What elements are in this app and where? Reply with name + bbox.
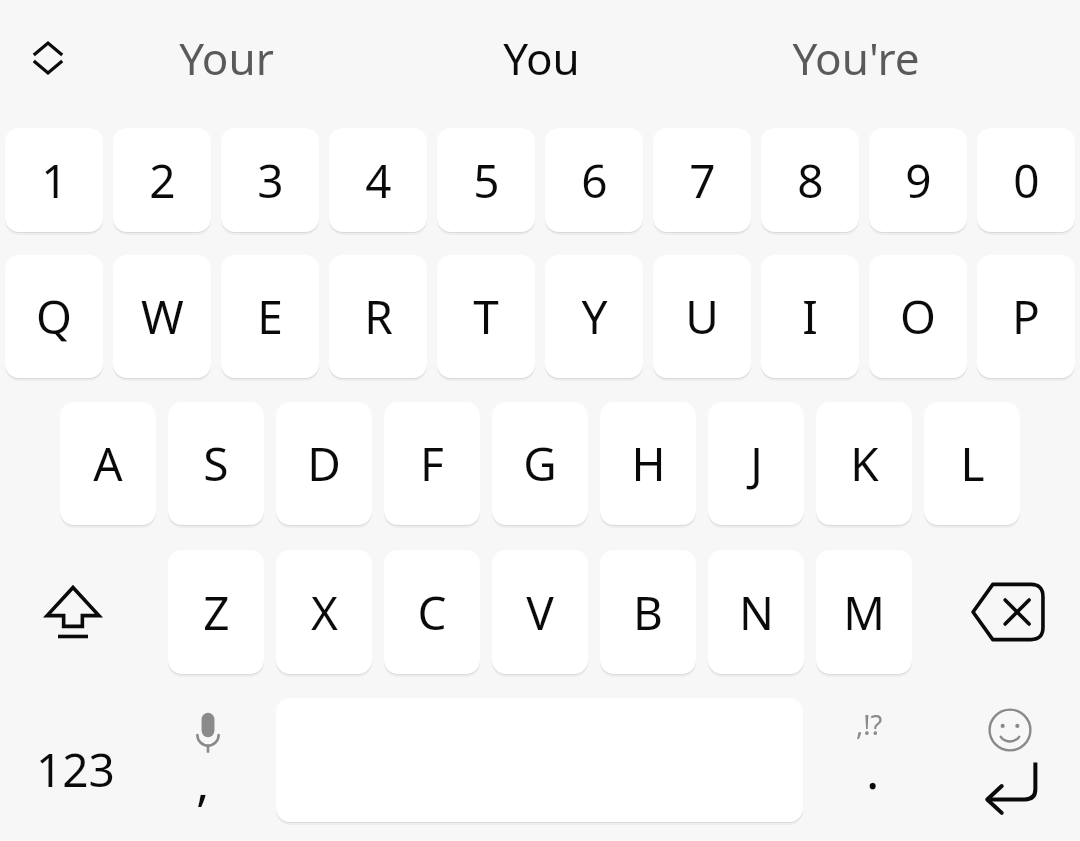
staticText: Z bbox=[203, 581, 230, 644]
button[interactable]: Z bbox=[168, 550, 264, 674]
staticText: B bbox=[633, 581, 663, 644]
staticText: 6 bbox=[581, 149, 608, 212]
button[interactable]: C bbox=[384, 550, 480, 674]
staticText: L bbox=[960, 432, 985, 495]
staticText: 1 bbox=[41, 149, 68, 212]
staticText: 0 bbox=[1013, 149, 1040, 212]
button[interactable]: You bbox=[411, 0, 671, 116]
button[interactable]: P bbox=[977, 255, 1075, 378]
button[interactable]: F bbox=[384, 402, 480, 525]
button[interactable]: Q bbox=[5, 255, 103, 378]
staticText: M bbox=[843, 581, 885, 644]
staticText: Q bbox=[36, 285, 72, 348]
staticText: U bbox=[685, 285, 719, 348]
button[interactable]: K bbox=[816, 402, 912, 525]
button[interactable]: 8 bbox=[761, 128, 859, 232]
staticText: 4 bbox=[365, 149, 392, 212]
button[interactable]: 5 bbox=[437, 128, 535, 232]
staticText: ,!? bbox=[856, 706, 883, 743]
staticText: 7 bbox=[689, 149, 716, 212]
button[interactable]: L bbox=[924, 402, 1020, 525]
staticText: 5 bbox=[473, 149, 500, 212]
button[interactable]: Period, punctuation bbox=[818, 698, 933, 841]
button[interactable]: J bbox=[708, 402, 804, 525]
staticText: F bbox=[420, 432, 444, 495]
staticText: X bbox=[311, 581, 338, 644]
button[interactable]: N bbox=[708, 550, 804, 674]
button[interactable]: 9 bbox=[869, 128, 967, 232]
button[interactable]: D bbox=[276, 402, 372, 525]
button[interactable]: Comma, voice input bbox=[150, 698, 270, 841]
staticText: S bbox=[203, 432, 229, 495]
staticText: You're bbox=[792, 28, 920, 88]
staticText: V bbox=[526, 581, 554, 644]
staticText: R bbox=[364, 285, 393, 348]
staticText: H bbox=[631, 432, 666, 495]
staticText: T bbox=[473, 285, 499, 348]
button[interactable]: X bbox=[276, 550, 372, 674]
staticText: P bbox=[1012, 285, 1040, 348]
staticText: 9 bbox=[905, 149, 932, 212]
button[interactable]: T bbox=[437, 255, 535, 378]
button[interactable]: S bbox=[168, 402, 264, 525]
staticText: W bbox=[141, 285, 184, 348]
staticText: 3 bbox=[257, 149, 284, 212]
staticText: A bbox=[93, 432, 123, 495]
staticText: G bbox=[523, 432, 557, 495]
button[interactable]: 1 bbox=[5, 128, 103, 232]
staticText: 2 bbox=[149, 149, 176, 212]
staticText: C bbox=[417, 581, 447, 644]
staticText: K bbox=[850, 432, 879, 495]
button[interactable]: 3 bbox=[221, 128, 319, 232]
button[interactable]: Backspace bbox=[944, 550, 1072, 674]
button[interactable]: 7 bbox=[653, 128, 751, 232]
staticText: , bbox=[196, 748, 210, 816]
button[interactable]: Y bbox=[545, 255, 643, 378]
staticText: O bbox=[900, 285, 936, 348]
button[interactable]: H bbox=[600, 402, 696, 525]
button[interactable]: E bbox=[221, 255, 319, 378]
staticText: You bbox=[503, 28, 580, 88]
button[interactable]: Enter, emoji bbox=[950, 698, 1070, 841]
button[interactable]: V bbox=[492, 550, 588, 674]
staticText: Y bbox=[581, 285, 608, 348]
button[interactable]: G bbox=[492, 402, 588, 525]
button[interactable]: 0 bbox=[977, 128, 1075, 232]
button[interactable]: A bbox=[60, 402, 156, 525]
button[interactable]: U bbox=[653, 255, 751, 378]
staticText: 123 bbox=[36, 738, 115, 801]
staticText: . bbox=[866, 736, 880, 804]
button[interactable]: Shift bbox=[8, 550, 138, 674]
button[interactable]: 6 bbox=[545, 128, 643, 232]
staticText: E bbox=[257, 285, 283, 348]
staticText: J bbox=[750, 432, 763, 495]
staticText: D bbox=[307, 432, 341, 495]
staticText: I bbox=[802, 285, 818, 348]
button[interactable]: M bbox=[816, 550, 912, 674]
staticText: Your bbox=[179, 28, 274, 88]
button[interactable]: 2 bbox=[113, 128, 211, 232]
button[interactable]: R bbox=[329, 255, 427, 378]
button[interactable]: I bbox=[761, 255, 859, 378]
staticText: 8 bbox=[797, 149, 824, 212]
button[interactable]: O bbox=[869, 255, 967, 378]
button[interactable]: You're bbox=[726, 0, 986, 116]
button[interactable]: Expand suggestions bbox=[0, 0, 96, 116]
button[interactable]: W bbox=[113, 255, 211, 378]
button[interactable]: 4 bbox=[329, 128, 427, 232]
button[interactable]: B bbox=[600, 550, 696, 674]
staticText: N bbox=[739, 581, 774, 644]
button[interactable]: 123 bbox=[0, 698, 150, 841]
button[interactable]: Your bbox=[96, 0, 356, 116]
